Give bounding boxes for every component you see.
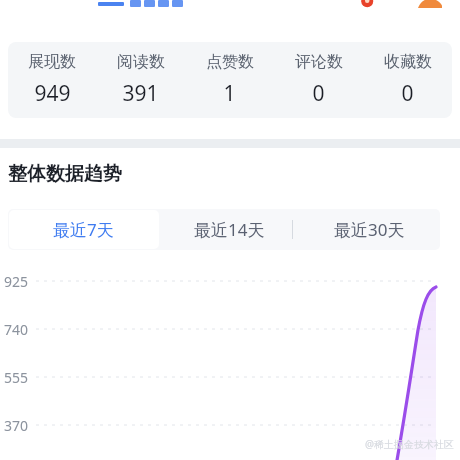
staticText: 点赞数 bbox=[206, 52, 254, 72]
staticText: 评论数 bbox=[295, 52, 343, 72]
button[interactable]: 展现数 bbox=[8, 42, 96, 118]
staticText: 阅读数 bbox=[117, 52, 165, 72]
staticText: 370 bbox=[4, 416, 29, 435]
staticText: 0 bbox=[401, 79, 414, 108]
staticText: 最近7天 bbox=[53, 218, 114, 241]
button[interactable]: 最近14天 bbox=[159, 209, 299, 250]
staticText: 整体数据趋势 bbox=[8, 162, 122, 186]
staticText: 0 bbox=[312, 79, 325, 108]
button[interactable]: 最近7天 bbox=[8, 209, 159, 250]
button[interactable]: 阅读数 bbox=[96, 42, 185, 118]
staticText: 925 bbox=[4, 272, 29, 291]
staticText: 最近30天 bbox=[334, 218, 405, 241]
button[interactable]: 收藏数 bbox=[363, 42, 452, 118]
staticText: 收藏数 bbox=[384, 52, 432, 72]
staticText: 展现数 bbox=[28, 52, 76, 72]
staticText: 740 bbox=[4, 320, 29, 339]
button[interactable]: 评论数 bbox=[274, 42, 363, 118]
staticText: 949 bbox=[34, 79, 71, 108]
staticText: 555 bbox=[4, 368, 29, 387]
staticText: 391 bbox=[122, 79, 159, 108]
staticText: 1 bbox=[223, 79, 236, 108]
button[interactable]: 点赞数 bbox=[185, 42, 274, 118]
button[interactable]: 最近30天 bbox=[299, 209, 440, 250]
staticText: @稀土掘金技术社区 bbox=[365, 437, 454, 451]
staticText: 最近14天 bbox=[194, 218, 265, 241]
